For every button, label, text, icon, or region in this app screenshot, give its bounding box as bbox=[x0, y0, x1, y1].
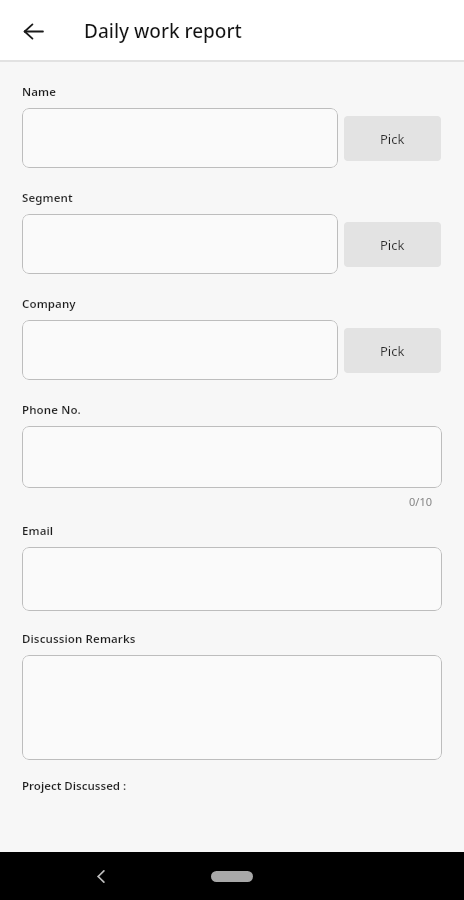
button[interactable] bbox=[22, 655, 442, 760]
staticText: Name bbox=[22, 84, 57, 100]
staticText: Pick bbox=[380, 236, 405, 254]
button[interactable] bbox=[22, 547, 442, 611]
button[interactable]: Pick bbox=[344, 116, 441, 161]
button[interactable]: Back bbox=[14, 12, 52, 50]
button[interactable] bbox=[22, 108, 338, 168]
button[interactable]: Home bbox=[211, 871, 253, 882]
staticText: Discussion Remarks bbox=[22, 631, 136, 647]
button[interactable]: Back bbox=[84, 859, 118, 893]
staticText: Segment bbox=[22, 190, 73, 206]
staticText: 0/10 bbox=[22, 494, 432, 509]
staticText: Pick bbox=[380, 130, 405, 148]
staticText: Company bbox=[22, 296, 76, 312]
staticText: Project Discussed : bbox=[22, 778, 127, 794]
staticText: Email bbox=[22, 523, 54, 539]
staticText: Pick bbox=[380, 342, 405, 360]
button[interactable] bbox=[22, 214, 338, 274]
button[interactable]: Pick bbox=[344, 222, 441, 267]
staticText: Daily work report bbox=[84, 18, 242, 44]
button[interactable] bbox=[22, 426, 442, 488]
staticText: Phone No. bbox=[22, 402, 81, 418]
button[interactable] bbox=[22, 320, 338, 380]
button[interactable]: Pick bbox=[344, 328, 441, 373]
